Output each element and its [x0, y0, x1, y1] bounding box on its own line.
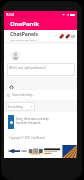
staticText: ChatPanels	[10, 31, 38, 38]
staticText: Real time Perfect Match	[10, 38, 37, 41]
staticText: OnePanik	[10, 20, 39, 28]
button[interactable]: OnePanik	[4, 18, 77, 30]
button[interactable]: Share	[53, 33, 58, 38]
button[interactable]: Messages	[64, 33, 70, 39]
staticText: Everything	[8, 105, 24, 109]
staticText: Search Activity...	[12, 93, 35, 97]
button[interactable]	[4, 145, 77, 158]
staticText: What's new, agilrajnishkumar?	[9, 66, 46, 70]
staticText: Sorry, there was no activity found for t…	[16, 117, 49, 125]
button[interactable]: Menu	[70, 33, 76, 39]
staticText: Copyright © 2021 ChatPanels	[9, 136, 45, 140]
button[interactable]: Notifications	[58, 33, 64, 39]
staticText: 9:04	[6, 12, 14, 17]
button[interactable]: Everything	[8, 102, 33, 111]
button[interactable]: What's new, agilrajnishkumar?	[7, 63, 75, 76]
button[interactable]: Search Activity...	[7, 90, 77, 100]
